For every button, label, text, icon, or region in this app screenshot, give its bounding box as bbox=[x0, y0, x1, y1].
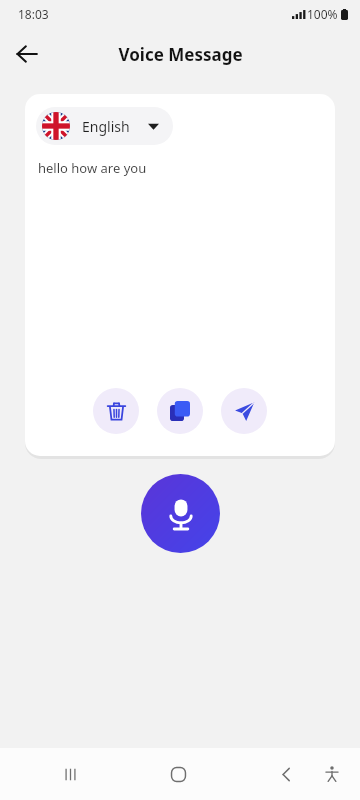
button[interactable]: Back bbox=[262, 750, 310, 798]
staticText: hello how are you bbox=[38, 159, 147, 177]
staticText: English bbox=[82, 117, 130, 136]
button[interactable]: Recents bbox=[46, 750, 94, 798]
staticText: 18:03 bbox=[18, 6, 49, 22]
button[interactable]: Delete bbox=[93, 388, 139, 434]
staticText: 100% bbox=[307, 6, 338, 22]
button[interactable]: English bbox=[36, 107, 173, 145]
button[interactable]: Accessibility bbox=[310, 752, 354, 796]
button[interactable]: Back bbox=[5, 32, 49, 76]
button[interactable]: Record voice message bbox=[141, 474, 220, 553]
button[interactable]: Send bbox=[221, 388, 267, 434]
button[interactable]: Home bbox=[154, 750, 202, 798]
staticText: Voice Message bbox=[118, 43, 243, 66]
button[interactable]: Copy bbox=[157, 388, 203, 434]
